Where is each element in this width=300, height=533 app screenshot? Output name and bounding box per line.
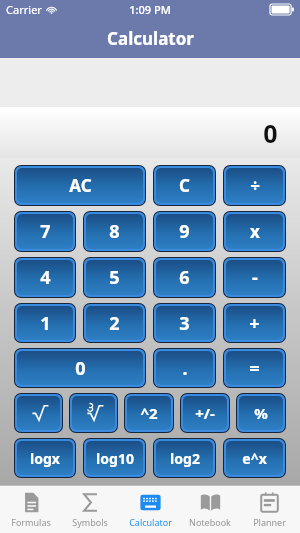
- staticText: ^2: [140, 403, 158, 423]
- staticText: 4: [40, 265, 51, 290]
- button[interactable]: -: [226, 260, 283, 295]
- other: Battery: [270, 4, 294, 15]
- button[interactable]: C: [156, 168, 213, 203]
- staticText: log2: [170, 449, 200, 468]
- button[interactable]: logx: [17, 441, 73, 475]
- button[interactable]: log10: [86, 441, 143, 475]
- button[interactable]: Planner: [240, 485, 298, 533]
- button[interactable]: Symbols: [61, 485, 119, 533]
- button[interactable]: +/-: [183, 396, 227, 430]
- staticText: %: [254, 403, 268, 423]
- button[interactable]: 1: [17, 306, 73, 340]
- button[interactable]: ^2: [127, 396, 171, 430]
- button[interactable]: 2: [86, 306, 143, 340]
- button[interactable]: Square root: [17, 396, 60, 430]
- button[interactable]: Formulas: [2, 485, 60, 533]
- button[interactable]: %: [239, 396, 283, 430]
- button[interactable]: 4: [17, 260, 73, 295]
- staticText: +: [249, 311, 260, 336]
- staticText: logx: [30, 449, 60, 468]
- button[interactable]: .: [156, 351, 213, 385]
- staticText: x: [250, 220, 260, 243]
- staticText: Carrier: [6, 2, 42, 17]
- staticText: 0: [75, 356, 86, 381]
- staticText: log10: [96, 449, 134, 468]
- staticText: 1: [40, 311, 51, 336]
- button[interactable]: +: [226, 306, 283, 340]
- staticText: 6: [179, 265, 190, 290]
- staticText: C: [179, 174, 190, 197]
- button[interactable]: 0: [17, 351, 143, 385]
- staticText: =: [249, 356, 260, 381]
- button[interactable]: AC: [17, 168, 143, 203]
- staticText: 5: [109, 265, 120, 290]
- staticText: 7: [40, 219, 51, 244]
- staticText: 0: [263, 116, 278, 150]
- button[interactable]: Notebook: [181, 485, 239, 533]
- button[interactable]: 6: [156, 260, 213, 295]
- staticText: 8: [109, 219, 120, 244]
- staticText: 1:09 PM: [129, 2, 171, 17]
- button[interactable]: log2: [156, 441, 213, 475]
- staticText: 2: [109, 311, 120, 336]
- button[interactable]: 5: [86, 260, 143, 295]
- button[interactable]: 7: [17, 214, 73, 249]
- staticText: 9: [179, 219, 190, 244]
- staticText: Formulas: [11, 516, 51, 528]
- staticText: ÷: [250, 174, 260, 197]
- button[interactable]: ÷: [226, 168, 283, 203]
- button[interactable]: 3: [156, 306, 213, 340]
- staticText: Calculator: [129, 516, 172, 528]
- staticText: Planner: [253, 516, 286, 528]
- button[interactable]: 8: [86, 214, 143, 249]
- staticText: e^x: [242, 449, 267, 468]
- staticText: AC: [69, 174, 92, 197]
- button[interactable]: Calculator: [121, 485, 179, 533]
- staticText: Calculator: [107, 27, 194, 50]
- button[interactable]: e^x: [226, 441, 283, 475]
- button[interactable]: x: [226, 214, 283, 249]
- staticText: +/-: [195, 403, 215, 423]
- staticText: Notebook: [189, 516, 231, 528]
- staticText: 3: [179, 311, 190, 336]
- button[interactable]: Cube root: [72, 396, 115, 430]
- staticText: -: [252, 265, 258, 290]
- staticText: Symbols: [72, 516, 108, 528]
- button[interactable]: =: [226, 351, 283, 385]
- staticText: .: [182, 356, 188, 381]
- button[interactable]: 9: [156, 214, 213, 249]
